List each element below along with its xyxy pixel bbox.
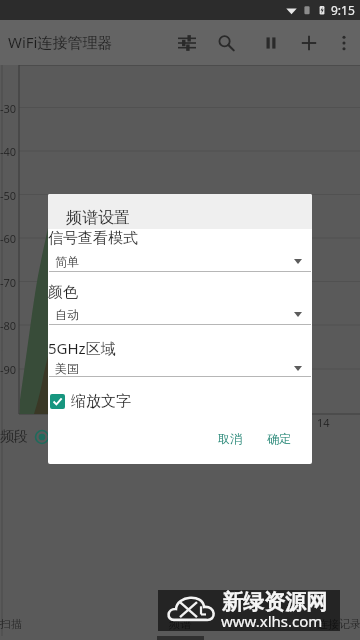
staticText: -40 (0, 144, 17, 159)
staticText: 连接记录 (317, 617, 360, 631)
staticText: 缩放文字 (71, 392, 131, 411)
button[interactable]: 缩放文字 (50, 391, 131, 411)
button[interactable]: Search (208, 20, 244, 65)
button[interactable]: 简单 (48, 249, 312, 273)
staticText: -80 (0, 318, 17, 333)
staticText: 频谱 (169, 617, 191, 631)
button[interactable]: More options (326, 20, 360, 65)
staticText: 确定 (267, 431, 291, 446)
staticText: 简单 (55, 254, 79, 269)
staticText: 美国 (55, 361, 79, 376)
staticText: 信号查看模式 (48, 229, 138, 248)
staticText: -60 (0, 231, 17, 246)
button[interactable]: 频段 (0, 426, 49, 448)
staticText: 新绿资源网 (222, 589, 327, 615)
button[interactable]: 连接记录 (309, 608, 360, 640)
button[interactable]: 确定 (263, 428, 295, 448)
staticText: 9:15 (331, 2, 355, 18)
staticText: 颜色 (48, 283, 78, 302)
staticText: 频谱设置 (66, 208, 130, 228)
button[interactable]: Filter (169, 20, 205, 65)
button[interactable]: 取消 (214, 428, 246, 448)
staticText: 频段 (0, 428, 28, 446)
staticText: WiFi连接管理器 (8, 32, 113, 52)
staticText: www.xlhs.com (221, 611, 323, 631)
button[interactable]: 美国 (48, 356, 312, 380)
staticText: 自动 (55, 307, 79, 322)
staticText: 取消 (218, 431, 242, 446)
staticText: -90 (0, 362, 17, 377)
button[interactable]: 扫描 (0, 608, 41, 640)
staticText: -30 (0, 101, 17, 116)
button[interactable]: 频谱 (150, 608, 210, 640)
staticText: -50 (0, 188, 17, 203)
button[interactable]: Add (291, 20, 327, 65)
staticText: 5GHz区域 (48, 338, 116, 358)
button[interactable]: Pause (253, 20, 289, 65)
staticText: 14 (317, 415, 330, 430)
staticText: 扫描 (0, 617, 22, 631)
staticText: -70 (0, 275, 17, 290)
button[interactable]: 自动 (48, 302, 312, 326)
